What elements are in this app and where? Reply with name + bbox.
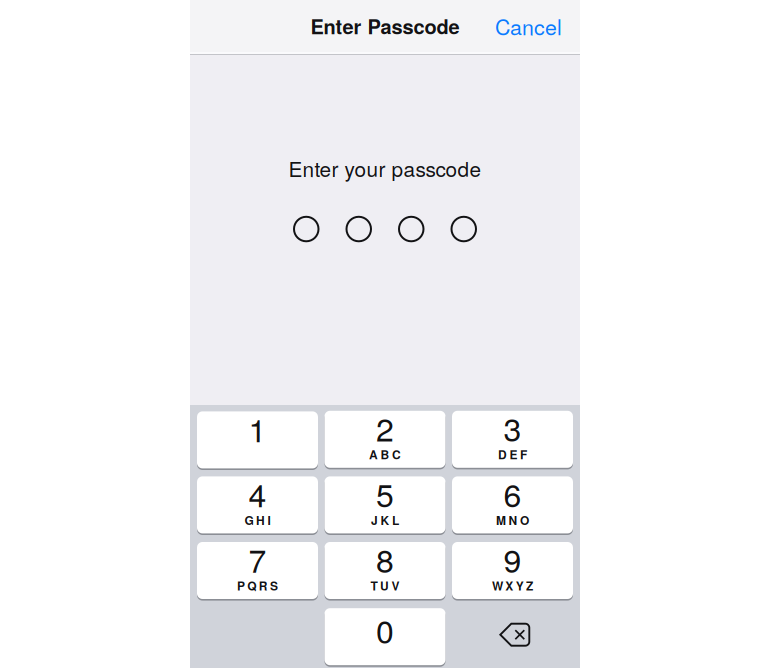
staticText: J [371, 511, 378, 529]
staticText: S [270, 577, 278, 594]
staticText: 2 [376, 405, 394, 451]
staticText: B [380, 446, 389, 463]
staticText: Y [516, 577, 524, 594]
staticText: G [245, 511, 254, 529]
staticText: 5 [376, 470, 394, 516]
staticText: N [508, 511, 517, 529]
button[interactable]: 9 [452, 543, 573, 600]
button[interactable]: Delete [452, 608, 573, 665]
staticText: 4 [248, 470, 266, 516]
staticText: 3 [503, 405, 521, 451]
staticText: E [509, 446, 517, 463]
button[interactable]: 6 [452, 477, 573, 534]
button[interactable]: Cancel [485, 2, 572, 50]
button[interactable]: 8 [324, 543, 445, 600]
staticText: 8 [376, 536, 394, 582]
staticText: 7 [248, 536, 266, 582]
staticText: T [371, 577, 378, 594]
staticText: C [392, 446, 401, 463]
button[interactable]: 5 [324, 477, 445, 534]
button[interactable]: 4 [197, 477, 318, 534]
staticText: P [237, 577, 245, 594]
staticText: R [259, 577, 268, 594]
button[interactable]: 7 [197, 543, 318, 600]
staticText: W [492, 577, 503, 594]
button[interactable]: 1 [197, 411, 318, 468]
staticText: V [391, 577, 399, 594]
button[interactable]: 2 [324, 411, 445, 468]
staticText: Z [526, 577, 533, 594]
staticText: O [520, 511, 529, 529]
staticText: F [520, 446, 527, 463]
staticText: D [498, 446, 507, 463]
staticText: 6 [503, 470, 521, 516]
staticText: X [505, 577, 513, 594]
staticText: A [369, 446, 378, 463]
staticText: Cancel [495, 11, 562, 41]
staticText: I [267, 511, 270, 529]
staticText: Enter Passcode [310, 12, 459, 40]
staticText: 1 [248, 405, 266, 451]
staticText: L [392, 511, 399, 529]
staticText: Q [247, 577, 256, 594]
staticText: 0 [376, 607, 394, 652]
staticText: Enter your passcode [288, 153, 481, 183]
staticText: U [380, 577, 389, 594]
staticText: H [256, 511, 265, 529]
button[interactable]: 3 [452, 411, 573, 468]
staticText: K [380, 511, 389, 529]
button[interactable]: 0 [324, 608, 445, 665]
staticText: M [496, 511, 506, 529]
staticText: 9 [503, 536, 521, 582]
